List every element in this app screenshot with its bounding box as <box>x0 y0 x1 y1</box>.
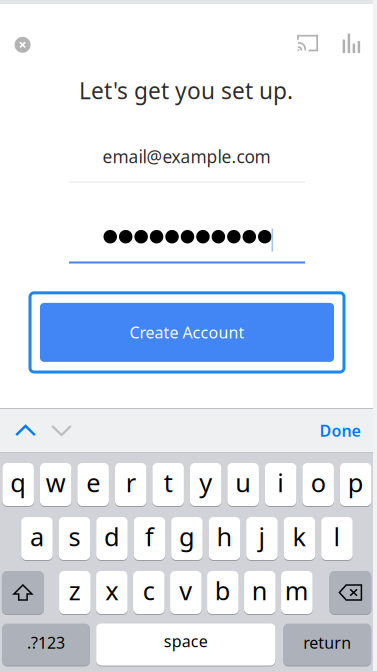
button[interactable]: .?123 <box>2 623 90 666</box>
staticText: w <box>46 466 66 499</box>
button[interactable]: j <box>246 516 278 560</box>
staticText: email@example.com <box>102 145 270 168</box>
button[interactable]: o <box>302 462 334 506</box>
staticText: space <box>164 630 208 652</box>
staticText: Done <box>319 420 360 441</box>
button[interactable]: a <box>21 516 53 560</box>
staticText: Create Account <box>129 322 244 343</box>
button[interactable]: Next field <box>43 409 79 452</box>
button[interactable]: y <box>190 462 221 506</box>
button[interactable]: Shift <box>2 570 44 614</box>
button[interactable]: f <box>134 516 165 560</box>
button[interactable]: b <box>207 570 239 614</box>
staticText: n <box>252 574 268 607</box>
button[interactable]: q <box>2 462 34 506</box>
staticText: b <box>215 574 231 607</box>
staticText: f <box>145 520 154 553</box>
button[interactable]: Done <box>316 409 364 452</box>
staticText: o <box>311 466 326 499</box>
button[interactable]: x <box>96 570 128 614</box>
button[interactable]: Close <box>3 25 43 65</box>
staticText: e <box>86 466 100 499</box>
button[interactable]: w <box>40 462 71 506</box>
staticText: a <box>30 520 44 553</box>
button[interactable]: Previous field <box>7 409 43 452</box>
button[interactable]: n <box>244 570 276 614</box>
button[interactable]: Create Account <box>40 303 334 362</box>
button[interactable]: space <box>96 623 275 666</box>
button[interactable]: return <box>283 623 371 666</box>
staticText: z <box>69 574 81 607</box>
button[interactable]: r <box>115 462 146 506</box>
staticText: m <box>285 574 309 607</box>
staticText: c <box>143 574 155 607</box>
button[interactable]: s <box>59 516 90 560</box>
staticText: p <box>348 466 364 499</box>
button[interactable]: v <box>170 570 202 614</box>
button[interactable]: i <box>265 462 296 506</box>
button[interactable]: h <box>209 516 240 560</box>
staticText: r <box>126 466 136 499</box>
button[interactable]: d <box>96 516 128 560</box>
button[interactable]: g <box>171 516 203 560</box>
staticText: u <box>235 466 251 499</box>
button[interactable]: Delete <box>329 570 371 614</box>
staticText: return <box>303 632 351 653</box>
button[interactable]: m <box>281 570 313 614</box>
button[interactable]: Statistics <box>336 28 366 58</box>
button[interactable]: p <box>340 462 371 506</box>
staticText: l <box>333 520 340 553</box>
button[interactable]: l <box>321 516 353 560</box>
button[interactable]: u <box>227 462 259 506</box>
staticText: t <box>164 466 173 499</box>
staticText: x <box>105 574 118 607</box>
staticText: g <box>179 520 195 553</box>
button[interactable]: e <box>77 462 109 506</box>
staticText: Let's get you set up. <box>79 75 293 105</box>
staticText: v <box>179 574 192 607</box>
button[interactable]: c <box>133 570 165 614</box>
button[interactable]: z <box>59 570 91 614</box>
staticText: h <box>216 520 232 553</box>
staticText: s <box>68 520 80 553</box>
staticText: q <box>10 466 26 499</box>
button[interactable]: Cast to device <box>291 26 325 60</box>
button[interactable]: t <box>152 462 184 506</box>
staticText: y <box>199 466 212 499</box>
staticText: j <box>258 520 265 553</box>
staticText: i <box>277 466 284 499</box>
staticText: k <box>292 520 306 553</box>
button[interactable]: k <box>284 516 315 560</box>
staticText: .?123 <box>27 632 65 653</box>
staticText: d <box>104 520 120 553</box>
